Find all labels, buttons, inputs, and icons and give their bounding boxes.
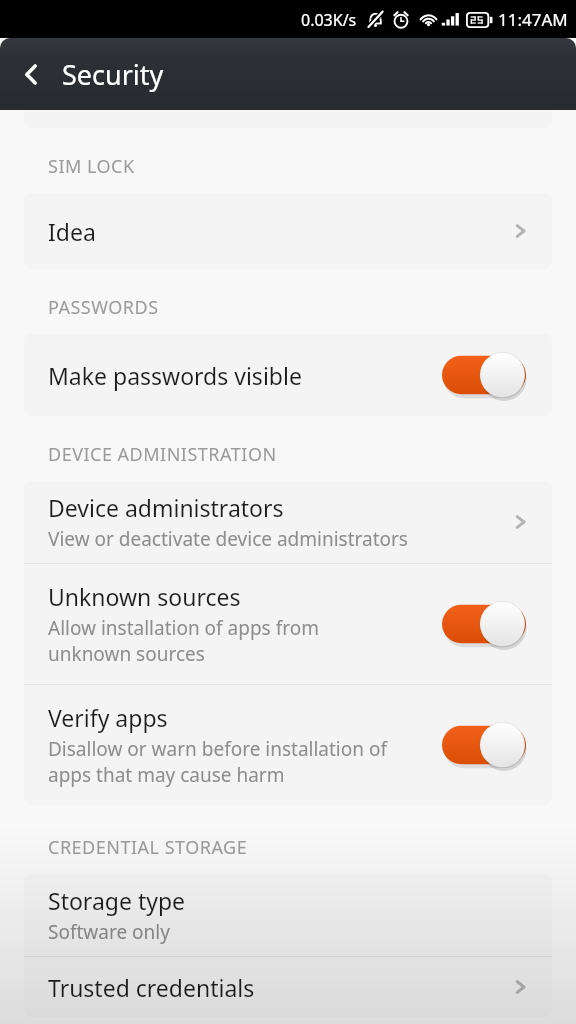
staticText: Device administrators [48, 492, 284, 523]
staticText: Storage type [48, 885, 186, 916]
staticText: SIM LOCK [48, 154, 135, 179]
staticText: 11:47AM [498, 8, 568, 31]
staticText: Security [62, 56, 164, 93]
staticText: Software only [48, 919, 170, 945]
button[interactable]: Storage type [24, 874, 552, 956]
staticText: Trusted credentials [48, 972, 510, 1003]
staticText: 0.03K/s [301, 9, 357, 31]
staticText: Unknown sources [48, 581, 241, 612]
button[interactable]: Unknown sources [24, 564, 552, 684]
staticText: Make passwords visible [48, 360, 442, 391]
button[interactable]: Toggle on [442, 600, 526, 648]
staticText: Idea [48, 216, 510, 247]
staticText: Verify apps [48, 702, 168, 733]
button[interactable]: Make passwords visible [24, 334, 552, 416]
staticText: View or deactivate device administrators [48, 526, 408, 552]
button[interactable]: Trusted credentials [24, 957, 552, 1017]
staticText: PASSWORDS [48, 295, 159, 320]
button[interactable]: Device administrators [24, 481, 552, 563]
staticText: apps that may cause harm [48, 762, 285, 788]
button[interactable]: Toggle on [442, 721, 526, 769]
button[interactable]: Toggle on [442, 351, 526, 399]
staticText: DEVICE ADMINISTRATION [48, 442, 277, 467]
staticText: Allow installation of apps from [48, 615, 319, 641]
staticText: unknown sources [48, 641, 205, 667]
staticText: CREDENTIAL STORAGE [48, 835, 248, 860]
button[interactable]: Back [0, 38, 62, 110]
button[interactable]: Idea [24, 193, 552, 269]
staticText: Disallow or warn before installation of [48, 736, 387, 762]
button[interactable]: Verify apps [24, 685, 552, 805]
